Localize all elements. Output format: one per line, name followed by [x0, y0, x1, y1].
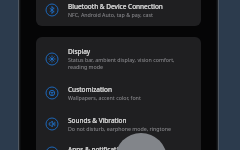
button[interactable]: Display	[36, 37, 201, 77]
staticText: Display	[68, 47, 91, 56]
button[interactable]: Sounds and vibration	[36, 108, 201, 137]
staticText: Sounds & Vibration	[68, 116, 127, 125]
staticText: Status bar, ambient display, vision comf…	[68, 56, 175, 70]
other: Customization	[36, 86, 68, 100]
staticText: NFC, Android Auto, tap & pay, cast	[68, 11, 153, 18]
button[interactable]: Bluetooth	[36, 2, 201, 18]
other: Apps and notifications	[36, 146, 68, 150]
staticText: Apps & notifications	[68, 145, 130, 150]
other: Display	[36, 52, 68, 66]
staticText: Wallpapers, accent color, font	[68, 94, 141, 101]
staticText: Customization	[68, 85, 112, 94]
other: Sounds and vibration	[36, 117, 68, 131]
button[interactable]: Customization	[36, 77, 201, 108]
button[interactable]: Apps and notifications	[36, 137, 201, 150]
staticText: Do not disturb, earphone mode, ringtone	[68, 125, 171, 132]
other: Bluetooth	[36, 3, 68, 17]
staticText: Bluetooth & Device Connection	[68, 2, 163, 11]
